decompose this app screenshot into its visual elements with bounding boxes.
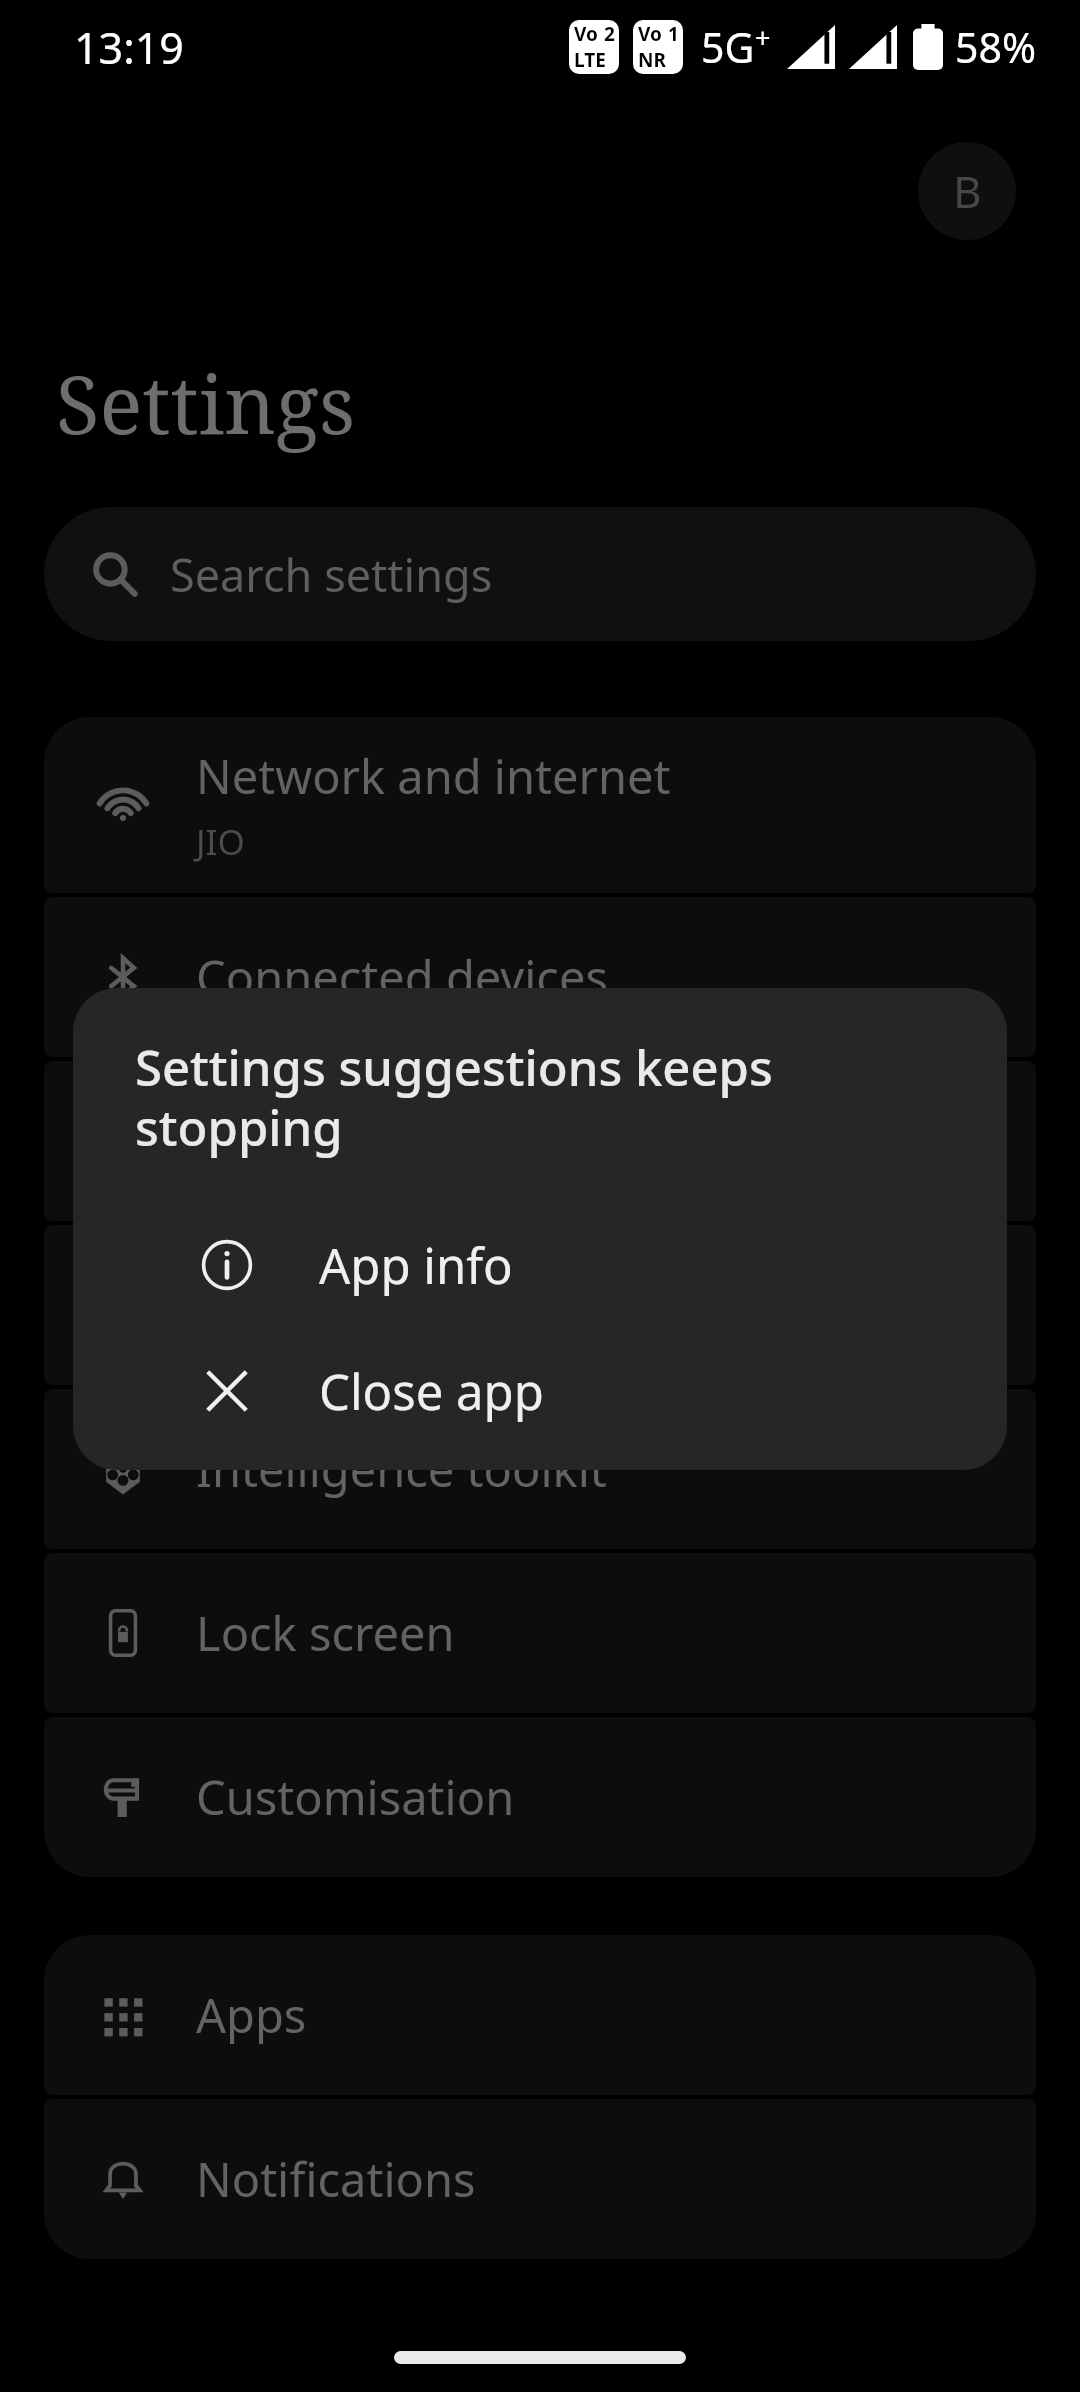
- button[interactable]: App info: [73, 1202, 1007, 1328]
- button[interactable]: Customisation: [44, 1717, 1036, 1877]
- staticText: 13:19: [74, 18, 184, 77]
- staticText: +: [755, 19, 771, 56]
- staticText: Display and brightness: [196, 1273, 702, 1337]
- staticText: JIO: [196, 818, 245, 866]
- staticText: Sound and vibration: [196, 1109, 643, 1173]
- button[interactable]: Close app: [73, 1328, 1007, 1454]
- staticText: Search settings: [170, 544, 493, 605]
- staticText: Notifications: [196, 2147, 476, 2211]
- staticText: 5G: [701, 19, 755, 75]
- staticText: Settings suggestions keeps stopping: [135, 1034, 945, 1160]
- staticText: Close app: [319, 1358, 544, 1425]
- staticText: 58%: [955, 19, 1036, 75]
- staticText: B: [953, 161, 982, 221]
- staticText: 2: [604, 21, 615, 47]
- staticText: LTE: [574, 47, 606, 73]
- button[interactable]: Account: [918, 142, 1016, 240]
- button[interactable]: Lock screen: [44, 1553, 1036, 1713]
- staticText: Intelligence toolkit: [196, 1437, 607, 1501]
- staticText: Connected devices: [196, 945, 608, 1009]
- button[interactable]: Connected devices: [44, 897, 1036, 1057]
- staticText: Network and internet: [196, 744, 671, 808]
- button[interactable]: Network and internet: [44, 717, 1036, 893]
- button[interactable]: Apps: [44, 1935, 1036, 2095]
- button[interactable]: Display and brightness: [44, 1225, 1036, 1385]
- staticText: NR: [638, 47, 666, 73]
- staticText: Vo: [574, 21, 598, 47]
- staticText: Apps: [196, 1983, 307, 2047]
- button[interactable]: Search settings: [44, 507, 1036, 641]
- staticText: Settings: [56, 348, 355, 457]
- staticText: Vo: [638, 21, 662, 47]
- staticText: App info: [319, 1232, 513, 1299]
- staticText: Customisation: [196, 1765, 515, 1829]
- button[interactable]: Sound and vibration: [44, 1061, 1036, 1221]
- button[interactable]: Intelligence toolkit: [44, 1389, 1036, 1549]
- staticText: Lock screen: [196, 1601, 455, 1665]
- button[interactable]: Notifications: [44, 2099, 1036, 2259]
- staticText: 1: [668, 21, 679, 47]
